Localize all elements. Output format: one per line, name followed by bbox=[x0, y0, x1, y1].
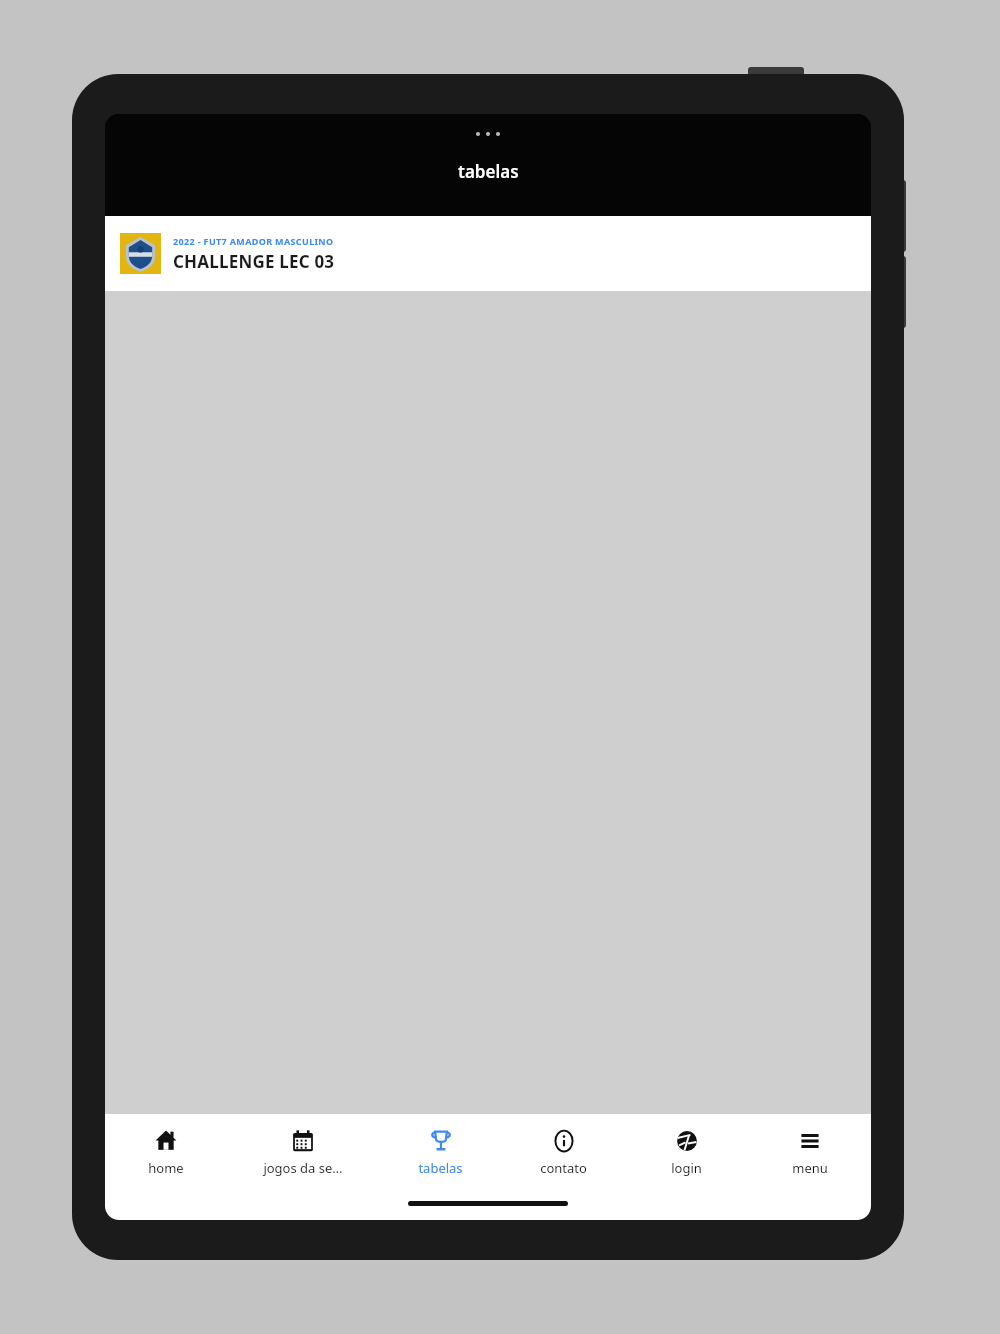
staticText: 2022 - FUT7 AMADOR MASCULINO bbox=[173, 235, 334, 247]
staticText: jogos da se… bbox=[263, 1159, 343, 1177]
button[interactable]: jogos da se… bbox=[227, 1114, 379, 1190]
button[interactable]: login bbox=[625, 1114, 748, 1190]
button[interactable]: contato bbox=[502, 1114, 625, 1190]
staticText: contato bbox=[540, 1159, 587, 1177]
staticText: home bbox=[148, 1159, 184, 1177]
staticText: menu bbox=[792, 1159, 828, 1177]
staticText: tabelas bbox=[458, 160, 519, 183]
staticText: login bbox=[671, 1159, 702, 1177]
button[interactable]: home bbox=[105, 1114, 227, 1190]
staticText: CHALLENGE LEC 03 bbox=[173, 250, 335, 273]
staticText: tabelas bbox=[418, 1159, 463, 1177]
button[interactable]: tabelas bbox=[379, 1114, 502, 1190]
button[interactable]: menu bbox=[748, 1114, 871, 1190]
